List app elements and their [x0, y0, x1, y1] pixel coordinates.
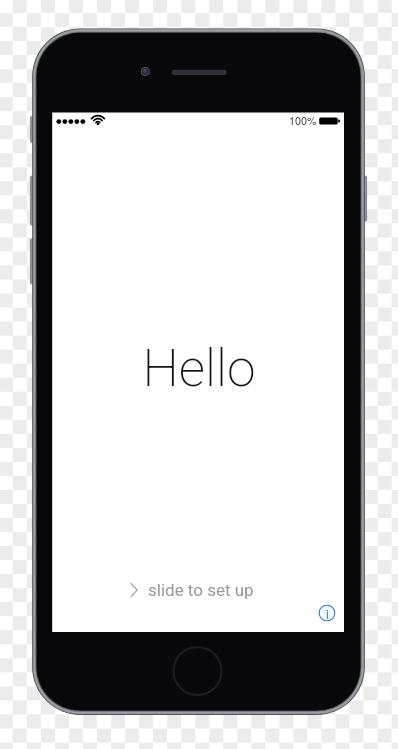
staticText: Hello [0, 338, 398, 398]
staticText: 100% [289, 113, 317, 128]
staticText: i [326, 605, 329, 622]
button[interactable]: Accessibility information [318, 604, 336, 622]
staticText: slide to set up [148, 580, 254, 600]
other: Battery full [318, 117, 344, 127]
button[interactable]: Home button [173, 647, 222, 696]
button[interactable]: slide to set up [125, 578, 256, 602]
other: Signal strength and Wi-Fi [55, 112, 110, 132]
